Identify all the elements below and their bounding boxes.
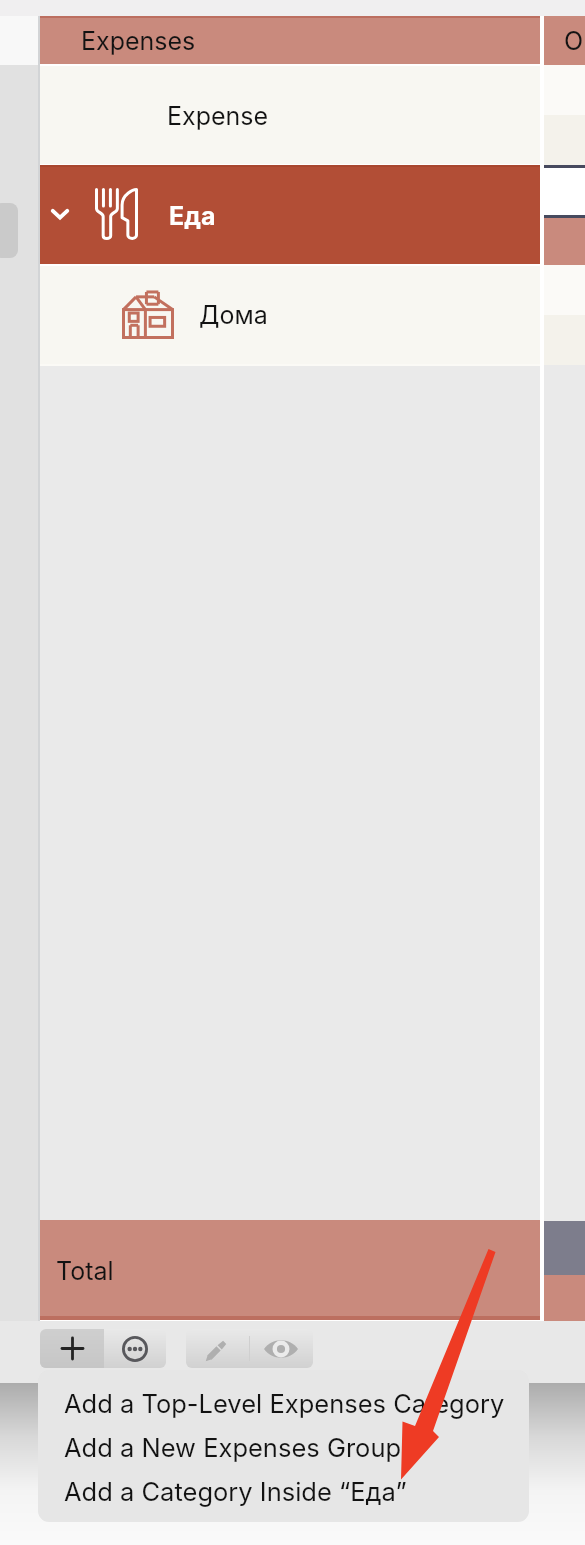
staticText: Expense bbox=[167, 101, 269, 131]
staticText: Дома bbox=[199, 300, 268, 330]
staticText: Add a Category Inside “Еда” bbox=[64, 1476, 407, 1507]
staticText: Add a New Expenses Group bbox=[64, 1432, 402, 1463]
button[interactable]: More options bbox=[104, 1329, 166, 1368]
button[interactable]: Edit bbox=[186, 1329, 249, 1368]
button[interactable]: Total bbox=[40, 1220, 540, 1320]
button[interactable]: Expenses bbox=[40, 16, 540, 64]
button[interactable]: Add a Top-Level Expenses Category bbox=[38, 1388, 529, 1422]
staticText: Total bbox=[56, 1256, 114, 1286]
staticText: O bbox=[564, 26, 584, 56]
staticText: Expenses bbox=[81, 26, 196, 56]
button[interactable]: Add bbox=[40, 1329, 104, 1368]
button[interactable]: Expense bbox=[40, 66, 540, 164]
staticText: Add a Top-Level Expenses Category bbox=[64, 1388, 505, 1419]
button[interactable]: Еда bbox=[40, 165, 540, 264]
button[interactable]: View bbox=[249, 1329, 313, 1368]
button[interactable]: Add a Category Inside “Еда” bbox=[38, 1476, 529, 1510]
button[interactable]: Add a New Expenses Group bbox=[38, 1432, 529, 1466]
button[interactable]: Дома bbox=[40, 266, 540, 364]
staticText: Еда bbox=[169, 201, 216, 231]
